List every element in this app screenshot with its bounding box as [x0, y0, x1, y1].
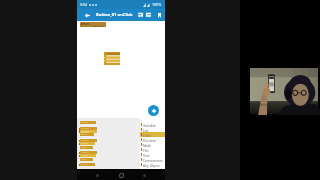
button[interactable] — [79, 127, 97, 130]
staticText: Button_01 onClick — [96, 12, 133, 18]
button[interactable] — [79, 142, 95, 145]
button[interactable] — [79, 154, 96, 157]
button[interactable]: Components — [140, 157, 165, 162]
staticText: Components — [143, 158, 163, 162]
staticText: youtube.com/Mr.Squiggle — [252, 103, 289, 107]
staticText: Flip — [143, 148, 149, 152]
button[interactable]: Decision — [140, 137, 165, 142]
button[interactable] — [79, 163, 95, 166]
button[interactable]: Save project — [156, 12, 163, 19]
staticText: Any Object — [143, 163, 160, 167]
button[interactable]: Undo — [136, 11, 144, 19]
staticText: 9:04 — [80, 2, 88, 7]
button[interactable]: Math — [140, 142, 165, 147]
button[interactable] — [80, 158, 93, 161]
button[interactable]: Any Object — [140, 162, 165, 167]
button[interactable]: Back — [84, 12, 91, 19]
button[interactable]: Flip — [140, 147, 165, 152]
staticText: Math — [143, 143, 152, 147]
button[interactable]: Variable — [140, 122, 165, 127]
button[interactable]: Add blocks — [148, 105, 159, 116]
staticText: when Button_01.Click — [80, 22, 106, 27]
button[interactable]: Recent apps — [141, 172, 148, 179]
button[interactable]: Home — [118, 172, 125, 179]
button[interactable]: List — [140, 127, 165, 132]
button[interactable]: when Button_01.Click — [80, 22, 106, 27]
button[interactable] — [79, 139, 97, 142]
staticText: List — [143, 128, 149, 132]
button[interactable] — [79, 130, 97, 133]
button[interactable] — [80, 146, 93, 149]
button[interactable]: Color — [140, 132, 165, 137]
staticText: 100% — [152, 2, 162, 7]
button[interactable] — [79, 151, 97, 154]
button[interactable]: Redo — [145, 11, 153, 19]
button[interactable]: Text — [140, 152, 165, 157]
staticText: Color — [143, 133, 152, 137]
button[interactable] — [80, 121, 96, 124]
staticText: Decision — [143, 138, 157, 142]
staticText: Text — [143, 153, 150, 157]
button[interactable]: Back — [94, 172, 101, 179]
staticText: Variable — [143, 123, 156, 127]
button[interactable] — [80, 133, 94, 136]
